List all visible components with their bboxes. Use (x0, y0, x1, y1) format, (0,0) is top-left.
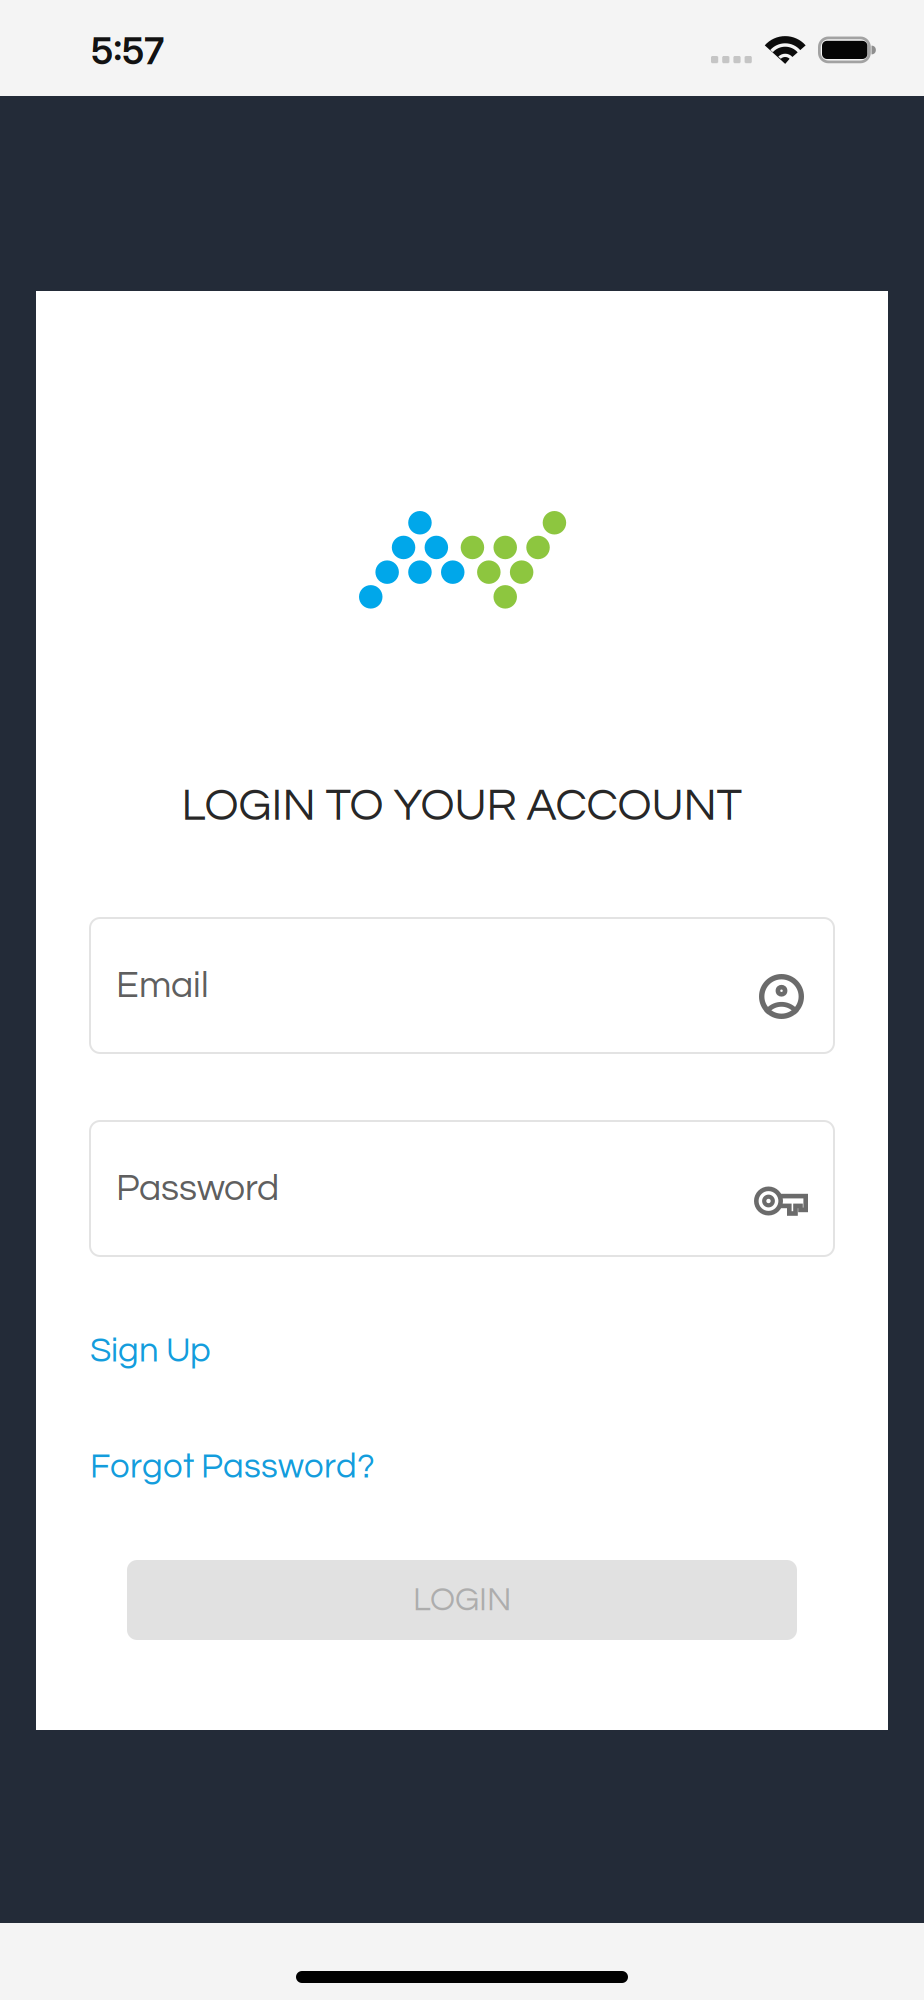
staticText: 5:57 (91, 28, 164, 73)
staticText: LOGIN TO YOUR ACCOUNT (181, 783, 742, 829)
staticText: Forgot Password? (90, 1449, 375, 1485)
button[interactable]: Password (90, 1121, 834, 1256)
staticText: LOGIN (413, 1583, 511, 1617)
staticText: Sign Up (90, 1333, 211, 1369)
button[interactable]: LOGIN (127, 1560, 797, 1640)
button[interactable]: Email (90, 918, 834, 1053)
button[interactable]: Sign Up (90, 1333, 211, 1369)
staticText: Password (116, 1169, 279, 1208)
button[interactable]: Forgot Password? (90, 1449, 375, 1485)
staticText: Email (116, 966, 209, 1005)
